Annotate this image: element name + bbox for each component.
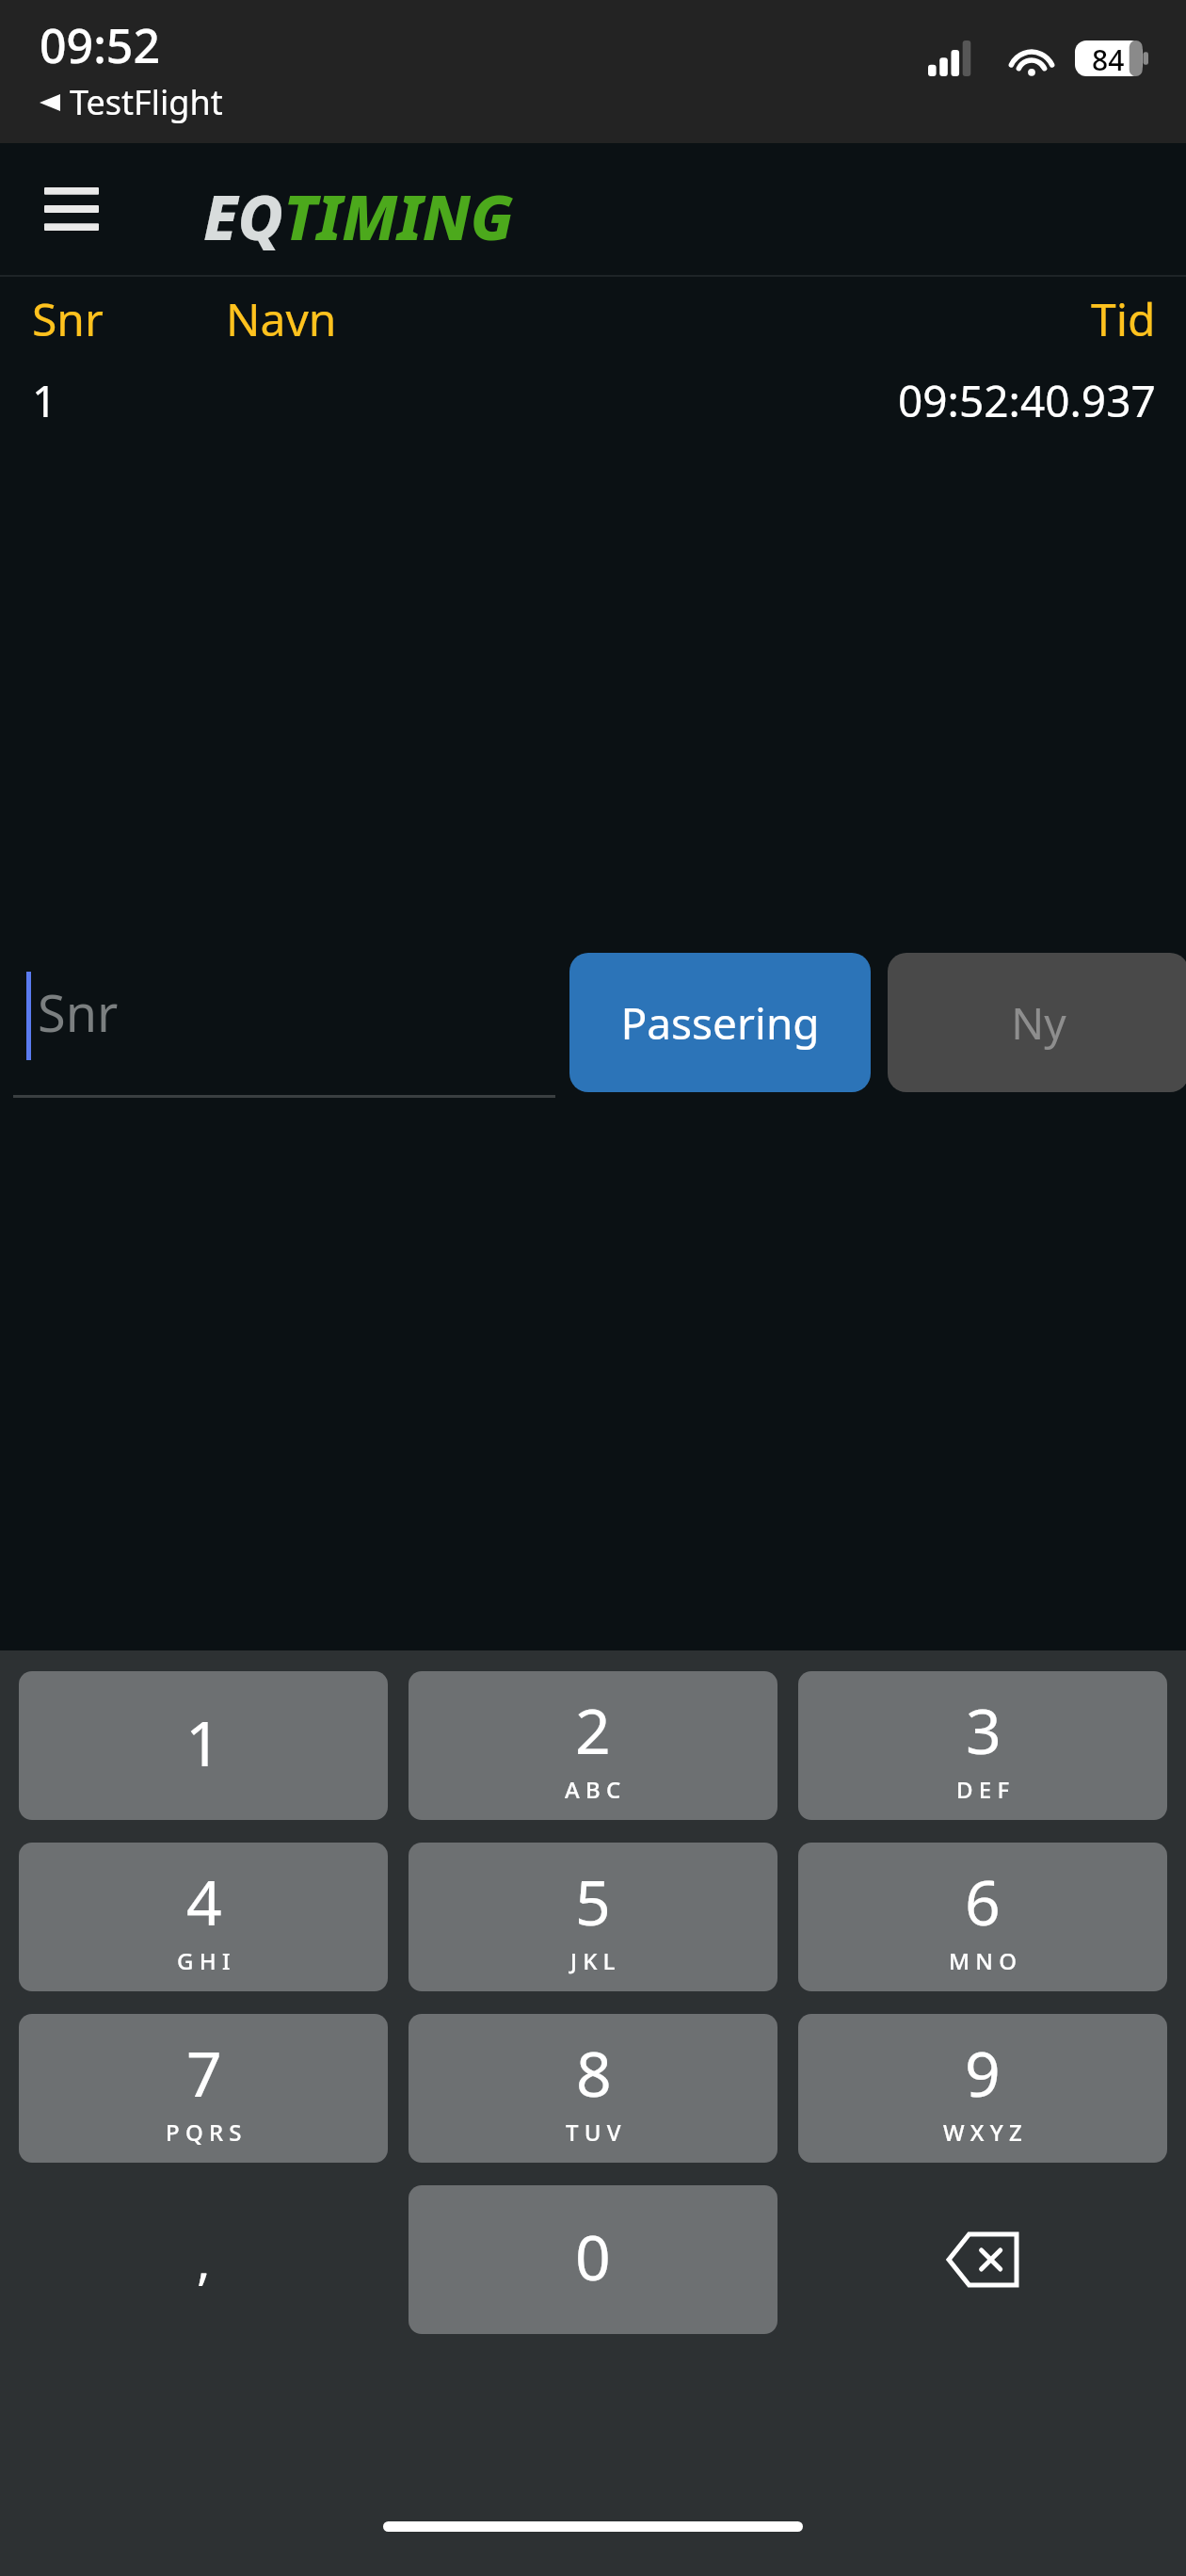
- button[interactable]: 8: [409, 2014, 777, 2163]
- staticText: Tid: [1091, 288, 1156, 349]
- staticText: Snr: [32, 288, 104, 349]
- staticText: 0: [575, 2214, 611, 2298]
- button[interactable]: Menu: [38, 177, 105, 241]
- staticText: 8: [576, 2030, 612, 2115]
- staticText: 1: [32, 371, 57, 430]
- staticText: T U V: [566, 2117, 621, 2148]
- staticText: 9: [965, 2030, 1001, 2115]
- staticText: Ny: [1011, 993, 1066, 1053]
- staticText: 09:52: [40, 13, 160, 77]
- staticText: 3: [966, 1687, 1002, 1772]
- button[interactable]: 2: [409, 1671, 777, 1820]
- button[interactable]: 3: [798, 1671, 1167, 1820]
- staticText: A B C: [565, 1774, 621, 1805]
- staticText: TestFlight: [70, 79, 223, 125]
- staticText: J K L: [570, 1945, 616, 1976]
- staticText: Snr: [38, 977, 119, 1047]
- button[interactable]: 9: [798, 2014, 1167, 2163]
- button[interactable]: 4: [19, 1843, 388, 1991]
- staticText: 1: [185, 1699, 221, 1784]
- staticText: 7: [186, 2030, 222, 2115]
- button[interactable]: 7: [19, 2014, 388, 2163]
- staticText: P Q R S: [166, 2117, 242, 2148]
- button[interactable]: 0: [409, 2185, 777, 2334]
- staticText: 84: [1092, 40, 1125, 76]
- staticText: 4: [186, 1859, 222, 1943]
- button[interactable]: Passering: [569, 953, 871, 1092]
- staticText: Passering: [620, 993, 820, 1053]
- staticText: Navn: [226, 288, 337, 349]
- staticText: 5: [575, 1859, 611, 1943]
- staticText: W X Y Z: [943, 2117, 1022, 2148]
- staticText: TIMING: [283, 173, 514, 258]
- button[interactable]: Backspace: [798, 2185, 1167, 2334]
- staticText: 2: [575, 1687, 611, 1772]
- button[interactable]: 1: [19, 1671, 388, 1820]
- button[interactable]: ,: [19, 2185, 388, 2334]
- button[interactable]: 6: [798, 1843, 1167, 1991]
- staticText: 6: [965, 1859, 1001, 1943]
- button[interactable]: Ny: [888, 953, 1186, 1092]
- staticText: M N O: [949, 1945, 1017, 1976]
- button[interactable]: 5: [409, 1843, 777, 1991]
- staticText: ,: [197, 2225, 211, 2294]
- staticText: G H I: [177, 1945, 231, 1976]
- staticText: D E F: [956, 1774, 1010, 1805]
- button[interactable]: 1: [0, 358, 1186, 452]
- staticText: EQ: [203, 173, 283, 258]
- button[interactable]: Snr: [13, 951, 555, 1098]
- staticText: 09:52:40.937: [898, 371, 1156, 430]
